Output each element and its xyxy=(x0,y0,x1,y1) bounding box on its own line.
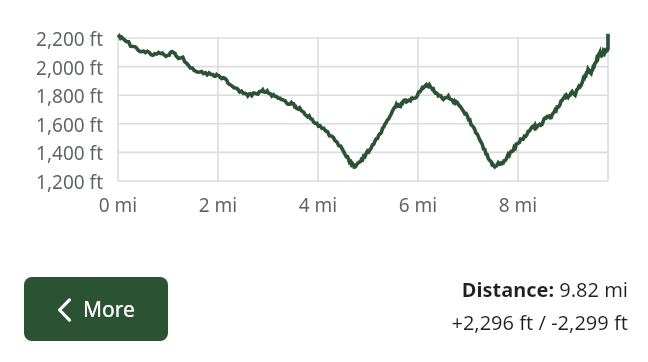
staticText: +2,296 ft / -2,299 ft xyxy=(328,309,628,336)
staticText: 8 mi xyxy=(478,192,558,218)
staticText: Distance: 9.82 mi xyxy=(328,276,628,303)
staticText: 6 mi xyxy=(378,192,458,218)
staticText: 0 mi xyxy=(78,192,158,218)
staticText: 1,600 ft xyxy=(0,112,103,138)
staticText: 1,800 ft xyxy=(0,83,103,109)
staticText: 4 mi xyxy=(278,192,358,218)
staticText: 1,400 ft xyxy=(0,140,103,166)
staticText: 2 mi xyxy=(178,192,258,218)
staticText: More xyxy=(83,295,135,324)
staticText: 2,200 ft xyxy=(0,26,103,52)
staticText: 1,200 ft xyxy=(0,169,103,195)
button[interactable]: More xyxy=(24,277,168,341)
staticText: 2,000 ft xyxy=(0,55,103,81)
